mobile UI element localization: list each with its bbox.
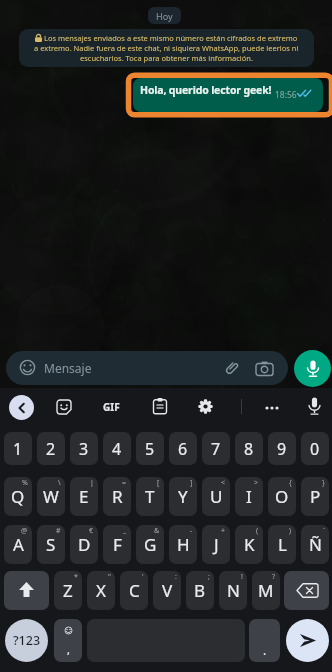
button[interactable]: 1 [4, 432, 32, 465]
button[interactable]: I [235, 477, 263, 516]
staticText: E [79, 485, 89, 508]
staticText: ( [256, 526, 259, 536]
button[interactable]: R [103, 477, 131, 516]
staticText: " [108, 572, 111, 582]
button[interactable]: M [252, 571, 280, 610]
button[interactable]: C [120, 571, 148, 610]
button[interactable]: 2 [37, 432, 65, 465]
button[interactable]: P [301, 477, 329, 516]
button[interactable]: D [70, 525, 98, 564]
staticText: | [90, 478, 94, 488]
button[interactable] [284, 571, 329, 610]
staticText: a extremo. Nadie fuera de este chat, ni … [34, 43, 299, 53]
staticText: _ [123, 526, 127, 536]
button[interactable]: X [87, 571, 115, 610]
staticText: A [13, 533, 24, 556]
button[interactable]: L [268, 525, 296, 564]
button[interactable]: T [136, 477, 164, 516]
staticText: ; [208, 572, 210, 582]
staticText: K [244, 533, 255, 556]
button[interactable]: , [54, 619, 82, 662]
staticText: Y [178, 485, 188, 508]
staticText: V [162, 579, 173, 602]
button[interactable]: Los mensajes enviados a este mismo númer… [19, 29, 314, 67]
staticText: 18:56 [275, 89, 297, 101]
staticText: = [122, 478, 127, 488]
staticText: 4 [112, 438, 122, 460]
button[interactable]: V [153, 571, 181, 610]
button[interactable]: Ñ [301, 525, 329, 564]
staticText: C [129, 579, 140, 602]
staticText: B [194, 579, 206, 602]
button[interactable]: Mensaje [6, 351, 288, 385]
staticText: Z [63, 579, 73, 602]
staticText: [ [157, 478, 160, 488]
staticText: ?123 [13, 632, 41, 649]
button[interactable] [4, 571, 49, 610]
button[interactable]: Q [4, 477, 32, 516]
button[interactable]: ?123 [5, 619, 48, 662]
button[interactable]: Hola, querido lector geek! [133, 78, 323, 112]
button[interactable]: B [186, 571, 214, 610]
staticText: Los mensajes enviados a este mismo númer… [44, 33, 298, 43]
button[interactable]: 0 [301, 432, 329, 465]
staticText: W [43, 485, 59, 508]
staticText: , [67, 642, 70, 657]
button[interactable]: Y [169, 477, 197, 516]
staticText: € [89, 526, 94, 536]
button[interactable]: U [202, 477, 230, 516]
button[interactable]: O [268, 477, 296, 516]
staticText: % [22, 478, 28, 488]
button[interactable]: 3 [70, 432, 98, 465]
button[interactable]: 4 [103, 432, 131, 465]
staticText: T [145, 485, 155, 508]
button[interactable]: H [169, 525, 197, 564]
button[interactable]: W [37, 477, 65, 516]
staticText: ´ [323, 526, 325, 536]
staticText: O [275, 485, 289, 508]
button[interactable]: E [70, 477, 98, 516]
button[interactable]: Z [54, 571, 82, 610]
staticText: X [96, 579, 106, 602]
staticText: S [46, 533, 56, 556]
staticText: \ [58, 478, 61, 488]
staticText: 8 [244, 438, 254, 460]
button[interactable]: A [4, 525, 32, 564]
button[interactable] [286, 619, 329, 662]
staticText: N [227, 579, 240, 602]
staticText: L [278, 533, 287, 556]
staticText: Mensaje [44, 360, 92, 376]
button[interactable] [197, 398, 214, 415]
button[interactable] [294, 350, 331, 387]
button[interactable] [9, 395, 34, 420]
staticText: @ [21, 526, 28, 536]
staticText: < [221, 478, 226, 488]
button[interactable]: J [202, 525, 230, 564]
button[interactable]: 7 [202, 432, 230, 465]
button[interactable]: 8 [235, 432, 263, 465]
staticText: 0 [310, 438, 320, 460]
button[interactable]: 9 [268, 432, 296, 465]
button[interactable]: K [235, 525, 263, 564]
button[interactable]: GIF [99, 399, 123, 415]
button[interactable]: F [103, 525, 131, 564]
button[interactable] [263, 399, 280, 416]
button[interactable]: G [136, 525, 164, 564]
button[interactable]: 5 [136, 432, 164, 465]
button[interactable] [307, 397, 322, 416]
button[interactable]: N [219, 571, 247, 610]
staticText: 6 [178, 438, 188, 460]
button[interactable] [56, 399, 72, 415]
button[interactable]: . [249, 619, 280, 662]
staticText: escucharlos. Toca para obtener más infor… [80, 53, 253, 63]
button[interactable]: S [37, 525, 65, 564]
staticText: # [56, 526, 61, 536]
staticText: & [154, 526, 160, 536]
staticText: D [78, 533, 91, 556]
button[interactable] [152, 398, 168, 414]
button[interactable]: 6 [169, 432, 197, 465]
staticText: 3 [79, 438, 89, 460]
staticText: G [144, 533, 157, 556]
staticText: P [310, 485, 321, 508]
